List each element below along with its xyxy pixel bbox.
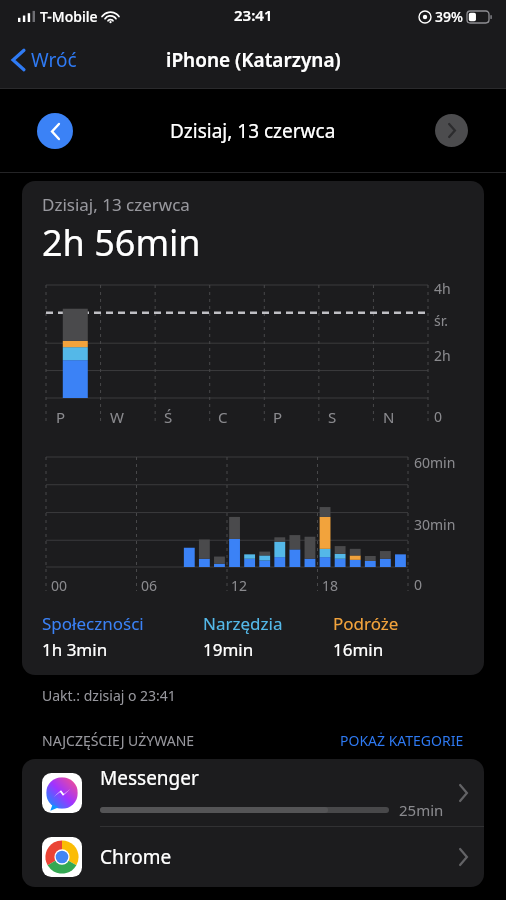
staticText: Ś (164, 407, 173, 427)
staticText: Wróć (31, 47, 77, 73)
staticText: 2h 56min (42, 218, 201, 267)
staticText: 18 (322, 576, 339, 595)
staticText: Podróże (333, 612, 399, 635)
staticText: 25min (399, 800, 453, 820)
staticText: 2h (434, 346, 451, 365)
staticText: Dzisiaj, 13 czerwca (42, 193, 190, 216)
staticText: 39% (435, 7, 463, 26)
button[interactable]: Poprzedni dzień (37, 113, 73, 149)
button[interactable]: Wróć (0, 41, 89, 79)
staticText: 16min (333, 638, 384, 661)
staticText: Narzędzia (203, 612, 283, 635)
button[interactable]: Dzisiaj, 13 czerwca (22, 181, 484, 675)
button[interactable]: Chrome (22, 827, 484, 887)
staticText: 06 (141, 576, 158, 595)
staticText: śr. (434, 311, 448, 330)
staticText: C (218, 407, 228, 427)
staticText: 4h (434, 279, 451, 298)
staticText: iPhone (Katarzyna) (166, 47, 341, 73)
button[interactable]: Messenger (22, 759, 484, 826)
staticText: Messenger (100, 765, 199, 791)
staticText: Uakt.: dzisiaj o 23:41 (42, 686, 176, 705)
staticText: 19min (203, 638, 254, 661)
button[interactable]: Następny dzień (435, 114, 468, 147)
staticText: 60min (414, 453, 456, 472)
staticText: 23:41 (234, 5, 273, 25)
staticText: 0 (414, 575, 423, 594)
staticText: 0 (434, 407, 443, 426)
staticText: Chrome (100, 844, 172, 870)
staticText: 1h 3min (42, 638, 108, 661)
staticText: Dzisiaj, 13 czerwca (170, 118, 336, 144)
staticText: Społeczności (42, 612, 144, 635)
staticText: 12 (231, 576, 248, 595)
staticText: POKAŻ KATEGORIE (340, 731, 464, 750)
staticText: P (56, 407, 66, 427)
staticText: NAJCZĘŚCIEJ UŻYWANE (42, 731, 195, 750)
staticText: S (328, 407, 337, 427)
button[interactable]: POKAŻ KATEGORIE (340, 731, 464, 750)
staticText: 30min (414, 515, 456, 534)
staticText: T-Mobile (40, 7, 98, 26)
staticText: W (110, 407, 124, 427)
staticText: P (273, 407, 283, 427)
staticText: 00 (51, 576, 68, 595)
staticText: N (383, 407, 395, 427)
